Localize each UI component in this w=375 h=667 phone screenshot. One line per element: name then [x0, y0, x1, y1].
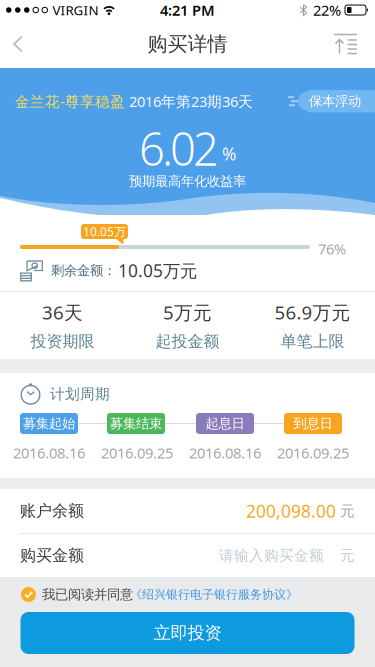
staticText: % — [222, 142, 236, 165]
staticText: 募集起始 — [23, 415, 75, 432]
button[interactable]: 立即投资 — [20, 612, 354, 654]
staticText: 2016.08.16 — [13, 443, 85, 462]
button[interactable] — [334, 21, 375, 66]
staticText: 到息日 — [293, 415, 332, 432]
staticText: 我已阅读并同意 — [42, 586, 133, 603]
staticText: 预期最高年化收益率 — [129, 173, 246, 189]
staticText: 金兰花-尊享稳盈 — [15, 91, 125, 111]
staticText: 2016.09.25 — [277, 443, 349, 462]
staticText: 剩余金额： — [51, 262, 116, 279]
staticText: 36天 — [42, 300, 83, 325]
button[interactable] — [0, 21, 25, 66]
staticText: 元 — [324, 546, 355, 564]
staticText: 4:21 PM — [160, 0, 215, 20]
staticText: 购买详情 — [147, 32, 227, 56]
staticText: VIRGIN — [52, 1, 98, 19]
staticText: 元 — [336, 502, 355, 520]
staticText: 计划周期 — [50, 385, 110, 403]
staticText: 购买金额 — [20, 546, 84, 565]
button[interactable]: 购买金额 — [0, 534, 375, 577]
staticText: 请输入购买金额 — [219, 546, 324, 564]
button[interactable]: 我已阅读并同意 — [0, 577, 375, 612]
staticText: 2016.08.16 — [189, 443, 261, 462]
staticText: 10.05万 — [83, 223, 126, 239]
staticText: 保本浮动 — [309, 93, 361, 109]
staticText: 6.02 — [139, 118, 219, 178]
staticText: 账户余额 — [20, 501, 84, 521]
staticText: 10.05万元 — [118, 259, 197, 282]
staticText: 2016.09.25 — [101, 443, 173, 462]
staticText: 56.9万元 — [274, 300, 350, 325]
staticText: 投资期限 — [30, 332, 94, 351]
staticText: 76% — [318, 239, 346, 258]
staticText: 22% — [313, 0, 341, 20]
staticText: 立即投资 — [153, 622, 221, 644]
staticText: 起投金额 — [155, 332, 219, 351]
staticText: 起息日 — [205, 415, 244, 432]
staticText: 200,098.00 — [246, 499, 336, 522]
staticText: 单笔上限 — [280, 332, 344, 351]
staticText: 《绍兴银行电子银行服务协议》 — [130, 587, 298, 602]
button[interactable]: 保本浮动 — [298, 90, 375, 112]
staticText: 2016年第23期36天 — [125, 91, 253, 111]
staticText: 5万元 — [163, 300, 212, 325]
staticText: 募集结束 — [110, 415, 162, 432]
